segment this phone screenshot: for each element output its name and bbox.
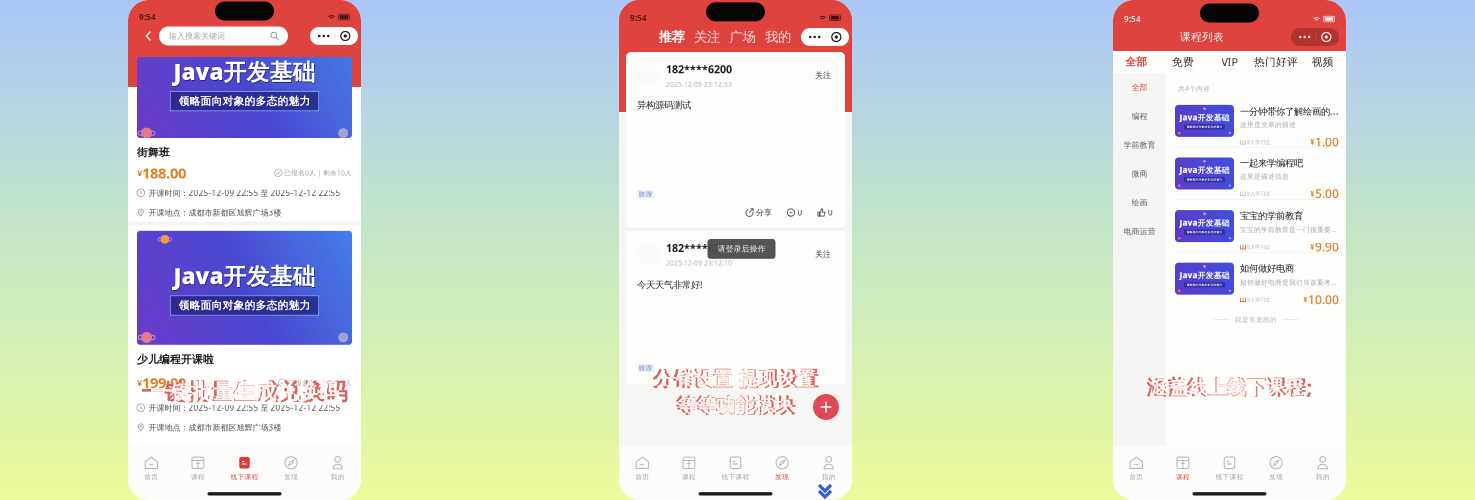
staticText: 关注 (815, 249, 831, 259)
staticText: Java开发基础 (174, 261, 316, 292)
button[interactable]: 编程 (1113, 102, 1166, 131)
button[interactable]: 返回 (138, 26, 159, 46)
button[interactable]: Java开发基础 (1166, 200, 1346, 252)
button[interactable]: 更多 (310, 27, 358, 45)
staticText: 2025-12-09 23:12:10 (666, 258, 732, 267)
button[interactable]: Java开发基础 (1166, 95, 1346, 147)
button[interactable]: 全部 (1113, 55, 1160, 68)
staticText: 9:54 (1124, 14, 1141, 24)
staticText: 开课地点：成都市新都区旭辉广场3楼 (149, 422, 282, 433)
button[interactable]: 全部 (1113, 73, 1166, 102)
button[interactable]: 我的 (1299, 453, 1346, 484)
button[interactable]: 输入搜索关键词 (159, 26, 288, 45)
button[interactable]: 课程 (175, 453, 221, 484)
staticText: 9:54 (139, 12, 156, 22)
button[interactable]: 发现 (759, 453, 805, 484)
button[interactable]: 我的 (314, 453, 361, 484)
button[interactable]: 视频 (1299, 55, 1346, 68)
staticText: 异构源码测试 (637, 99, 691, 111)
staticText: 开课时间：2025-12-09 22:55 至 2025-12-12 22:55 (149, 402, 341, 413)
staticText: 首页 (635, 473, 649, 481)
button[interactable]: 关注 (812, 68, 834, 82)
staticText: 5.00 (1315, 186, 1339, 201)
button[interactable]: 首页 (128, 453, 175, 484)
staticText: 共4个内容 (1178, 84, 1210, 93)
button[interactable]: 发布 (813, 394, 839, 420)
button[interactable]: Java开发基础 (1166, 147, 1346, 199)
button[interactable]: 0 (817, 207, 833, 218)
staticText: 涵盖线上线下课程; (1151, 374, 1308, 399)
staticText: 今天天气非常好! (637, 278, 703, 291)
staticText: 这里是描述信息 (1240, 172, 1289, 181)
staticText: 如何做好电商是我们当该要考虑的… (1240, 278, 1339, 286)
staticText: 街舞班 (137, 146, 170, 159)
staticText: 免费 (1172, 55, 1194, 68)
staticText: 首页 (1129, 473, 1143, 481)
staticText: 领略面向对象的多态的魅力 (178, 95, 310, 108)
button[interactable]: 关注 (694, 27, 720, 47)
staticText: 关注 (694, 29, 720, 45)
staticText: 8人学习过 (1246, 243, 1270, 250)
button[interactable]: 广场 (729, 27, 755, 47)
button[interactable]: 热门好评 (1253, 55, 1299, 68)
staticText: 线下课程 (721, 473, 749, 481)
button[interactable]: 学前教育 (1113, 131, 1166, 159)
button[interactable]: 0 (787, 207, 802, 218)
staticText: 0 (828, 207, 833, 218)
staticText: 视频 (1312, 55, 1334, 68)
staticText: 一起来学编程吧 (1240, 157, 1303, 169)
staticText: Java开发基础 (1179, 112, 1229, 123)
button[interactable]: 更多 (1291, 28, 1339, 46)
button[interactable]: 我的 (805, 453, 852, 484)
staticText: 一键批量生成兑换码 (141, 378, 348, 406)
staticText: Java开发基础 (173, 260, 315, 291)
staticText: Java开发基础 (174, 57, 316, 87)
staticText: 发现 (775, 473, 789, 481)
staticText: 等等功能模块 (678, 394, 792, 417)
button[interactable]: 微商 (1113, 159, 1166, 188)
button[interactable]: 分享 (745, 208, 772, 217)
button[interactable]: 课程 (666, 453, 712, 484)
button[interactable]: 线下课程 (221, 453, 268, 484)
staticText: 182****6200 (666, 241, 732, 255)
staticText: ¥ (1310, 137, 1315, 147)
staticText: 课程 (682, 473, 696, 481)
staticText: 课程 (191, 473, 205, 481)
staticText: 已报名0人｜剩余10人 (282, 168, 352, 177)
button[interactable]: 发现 (268, 453, 314, 484)
staticText: 微商 (1131, 169, 1147, 179)
button[interactable]: 电商运营 (1113, 217, 1166, 246)
button[interactable]: 线下课程 (712, 453, 759, 484)
button[interactable]: Java开发基础 (1166, 253, 1346, 305)
button[interactable]: 关注 (812, 247, 834, 261)
button[interactable]: 发现 (1253, 453, 1299, 484)
staticText: 宝宝的学前教育是一门很重要的课… (1240, 225, 1339, 234)
staticText: ¥ (1310, 242, 1315, 252)
staticText: 分享 (756, 208, 772, 217)
button[interactable]: 首页 (1113, 453, 1160, 484)
button[interactable]: 我的 (765, 27, 791, 47)
staticText: 2025-12-09 23:12:53 (666, 80, 732, 89)
staticText: 领略面向对象的多态的魅力 (1186, 178, 1222, 181)
staticText: 我的 (1316, 473, 1330, 481)
staticText: 这里是文章的描述 (1240, 121, 1296, 129)
staticText: 关注 (815, 70, 831, 80)
button[interactable]: 免费 (1160, 55, 1206, 68)
button[interactable]: VIP (1206, 55, 1253, 69)
staticText: 188.00 (142, 163, 186, 183)
staticText: 全部 (1125, 55, 1147, 68)
staticText: 199.00 (142, 373, 186, 392)
button[interactable]: 绘画 (1113, 188, 1166, 217)
staticText: 请登录后操作 (717, 244, 765, 254)
staticText: 9.90 (1315, 239, 1339, 255)
staticText: ¥ (137, 376, 142, 389)
staticText: 1.00 (1315, 134, 1339, 150)
staticText: 发现 (284, 473, 298, 481)
staticText: 我是有底线的 (714, 398, 756, 406)
button[interactable]: 首页 (619, 453, 666, 484)
button[interactable]: 更多 (801, 28, 849, 46)
button[interactable]: 课程 (1160, 453, 1206, 484)
button[interactable]: 线下课程 (1206, 453, 1253, 484)
staticText: 广场 (729, 29, 755, 45)
button[interactable]: 推荐 (658, 27, 684, 47)
